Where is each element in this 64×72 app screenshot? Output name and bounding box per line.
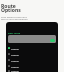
staticText: Route Options <box>1 3 21 14</box>
staticText: Option <box>11 59 20 62</box>
button[interactable] <box>8 35 56 43</box>
button[interactable]: Option <box>8 57 56 63</box>
button[interactable]: Option <box>8 45 56 51</box>
button[interactable]: Option <box>8 63 56 69</box>
staticText: Option <box>11 69 20 72</box>
staticText: Option <box>11 65 20 68</box>
staticText: Option <box>11 53 20 56</box>
button[interactable] <box>50 39 55 42</box>
staticText: Option <box>11 47 20 50</box>
button[interactable]: Option <box>8 51 56 57</box>
staticText: Best route <box>8 31 21 34</box>
button[interactable]: Option <box>8 69 56 72</box>
staticText: Find fastest route and get to your desti… <box>1 15 28 21</box>
